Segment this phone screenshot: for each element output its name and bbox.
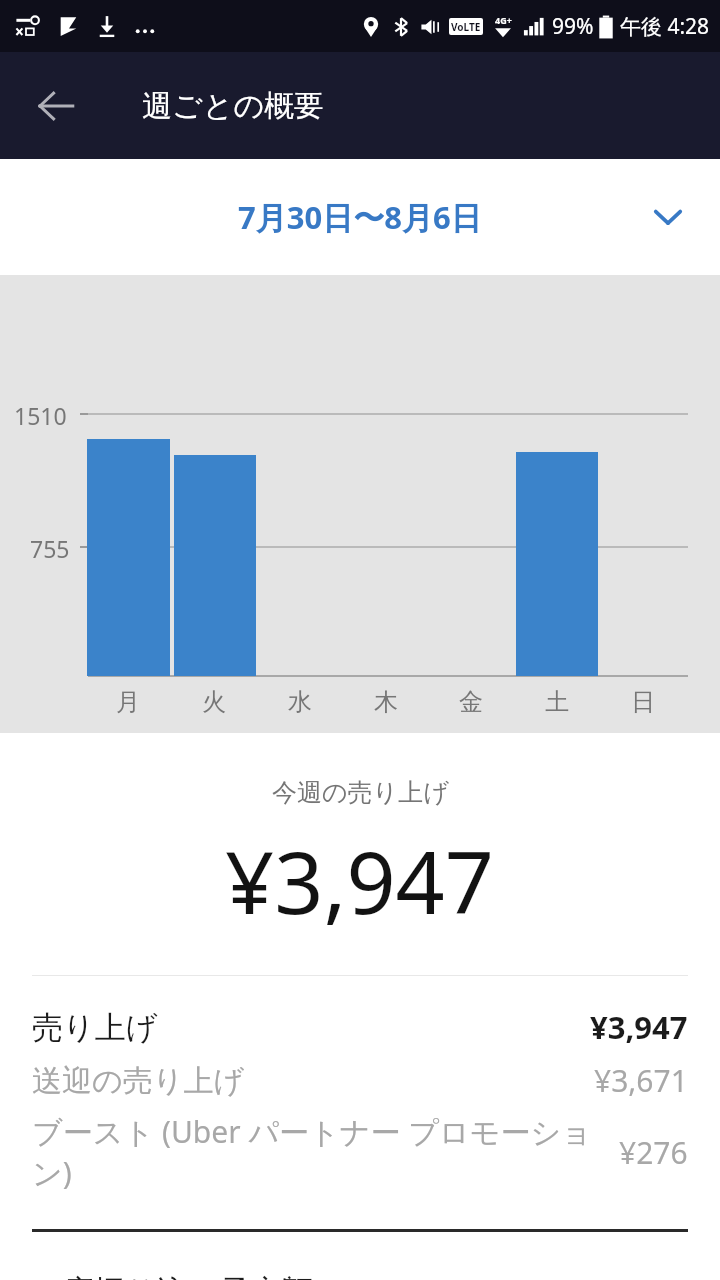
staticText: 755 [30,533,70,564]
staticText: VoLTE [451,20,481,34]
staticText: 水 [288,687,312,717]
staticText: 7月30日〜8月6日 [238,196,482,238]
staticText: ¥276 [619,1132,688,1173]
staticText: 口座振り込み予定額 [32,1272,313,1280]
staticText: ¥3,947 [590,1006,688,1048]
staticText: 午後 4:28 [620,12,710,41]
button[interactable]: ブースト (Uber パートナー プロモーション) [0,1111,720,1193]
other: 期間を選択 [646,195,690,239]
staticText: ブースト (Uber パートナー プロモーション) [32,1111,607,1193]
button[interactable]: 口座振り込み予定額 [0,1272,720,1280]
staticText: 売り上げ [32,1008,158,1047]
staticText: 金 [459,687,483,717]
staticText: 火 [202,687,226,717]
button[interactable]: 送迎の売り上げ [0,1060,720,1101]
staticText: 送迎の売り上げ [32,1062,245,1100]
staticText: 土 [545,687,569,717]
button[interactable]: 売り上げ [0,1006,720,1048]
staticText: 99% [552,12,594,41]
staticText: 今週の売り上げ [272,777,449,808]
staticText: 1510 [14,400,67,431]
staticText: ¥3,671 [594,1060,688,1101]
button[interactable]: 戻る [22,72,90,140]
button[interactable]: 7月30日〜8月6日 [0,159,720,275]
staticText: 月 [116,687,140,717]
staticText: 4G+ [495,14,512,26]
staticText: 木 [374,687,398,717]
staticText: ¥3,947 [225,822,495,939]
staticText: 週ごとの概要 [142,87,325,125]
staticText: 日 [631,687,655,717]
